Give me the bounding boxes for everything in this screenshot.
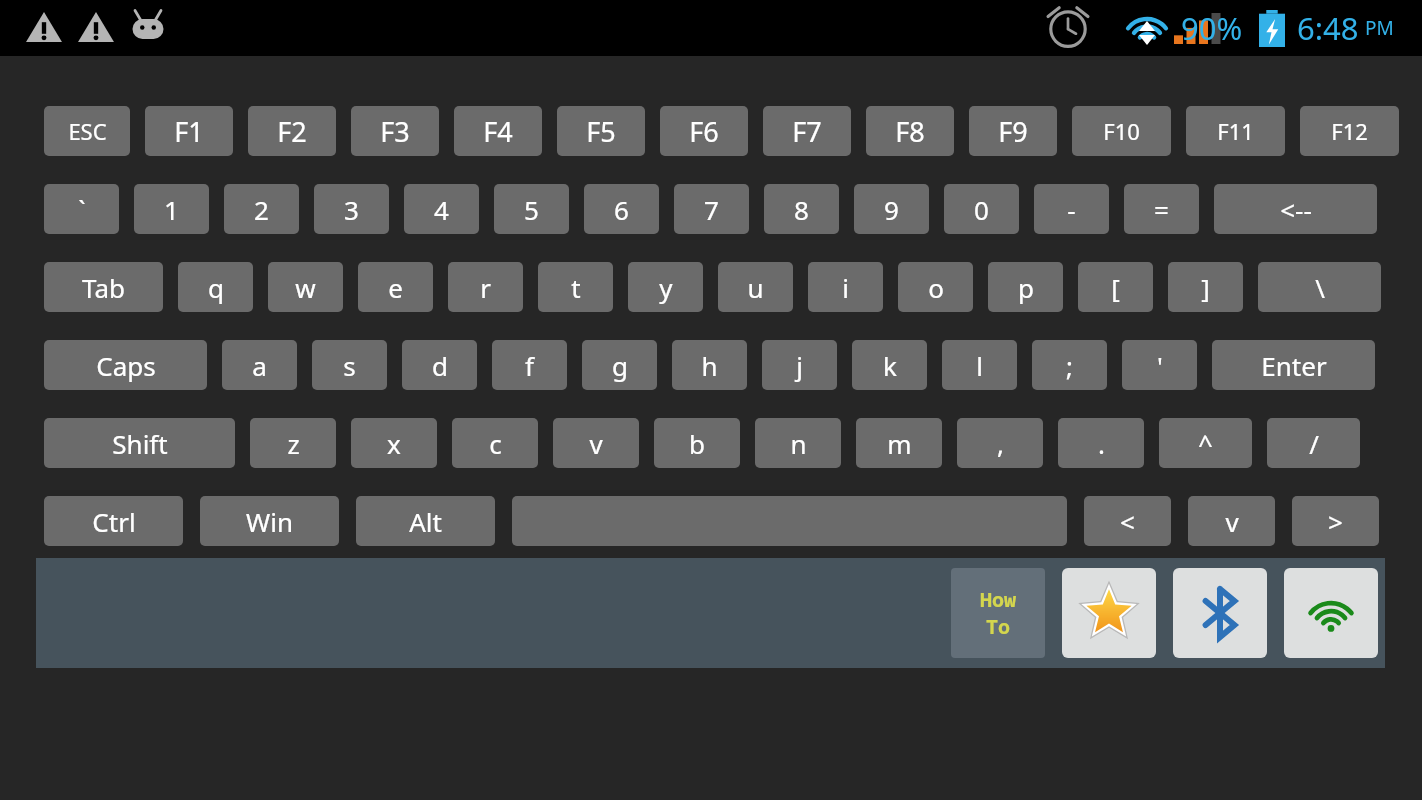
- button[interactable]: ]: [1168, 262, 1243, 312]
- button[interactable]: 3: [314, 184, 389, 234]
- staticText: q: [208, 270, 224, 305]
- staticText: 9: [884, 192, 899, 227]
- staticText: v: [589, 426, 603, 461]
- button[interactable]: f: [492, 340, 567, 390]
- button[interactable]: ': [1122, 340, 1197, 390]
- button[interactable]: 1: [134, 184, 209, 234]
- staticText: F10: [1103, 116, 1140, 146]
- button[interactable]: F1: [145, 106, 233, 156]
- button[interactable]: Alt: [356, 496, 495, 546]
- button[interactable]: ^: [1159, 418, 1252, 468]
- button[interactable]: `: [44, 184, 119, 234]
- button[interactable]: i: [808, 262, 883, 312]
- button[interactable]: F10: [1072, 106, 1171, 156]
- staticText: F6: [689, 113, 719, 150]
- button[interactable]: k: [852, 340, 927, 390]
- button[interactable]: a: [222, 340, 297, 390]
- button[interactable]: 6: [584, 184, 659, 234]
- button[interactable]: /: [1267, 418, 1360, 468]
- button[interactable]: b: [654, 418, 740, 468]
- button[interactable]: m: [856, 418, 942, 468]
- button[interactable]: q: [178, 262, 253, 312]
- button[interactable]: Bluetooth: [1173, 568, 1267, 658]
- button[interactable]: w: [268, 262, 343, 312]
- button[interactable]: t: [538, 262, 613, 312]
- button[interactable]: .: [1058, 418, 1144, 468]
- button[interactable]: 5: [494, 184, 569, 234]
- button[interactable]: r: [448, 262, 523, 312]
- button[interactable]: s: [312, 340, 387, 390]
- button[interactable]: -: [1034, 184, 1109, 234]
- button[interactable]: F9: [969, 106, 1057, 156]
- button[interactable]: Tab: [44, 262, 163, 312]
- staticText: F7: [792, 113, 822, 150]
- staticText: a: [252, 348, 267, 383]
- button[interactable]: F6: [660, 106, 748, 156]
- button[interactable]: F7: [763, 106, 851, 156]
- button[interactable]: F4: [454, 106, 542, 156]
- button[interactable]: d: [402, 340, 477, 390]
- staticText: r: [480, 270, 491, 305]
- staticText: 0: [974, 192, 989, 227]
- button[interactable]: ;: [1032, 340, 1107, 390]
- button[interactable]: p: [988, 262, 1063, 312]
- button[interactable]: Favorites: [1062, 568, 1156, 658]
- button[interactable]: F5: [557, 106, 645, 156]
- button[interactable]: y: [628, 262, 703, 312]
- button[interactable]: How: [951, 568, 1045, 658]
- button[interactable]: j: [762, 340, 837, 390]
- button[interactable]: Down: [1188, 496, 1275, 546]
- button[interactable]: Win: [200, 496, 339, 546]
- button[interactable]: 4: [404, 184, 479, 234]
- button[interactable]: Shift: [44, 418, 235, 468]
- button[interactable]: Left: [1084, 496, 1171, 546]
- button[interactable]: F3: [351, 106, 439, 156]
- button[interactable]: Right: [1292, 496, 1379, 546]
- button[interactable]: ,: [957, 418, 1043, 468]
- staticText: k: [883, 348, 897, 383]
- button[interactable]: 8: [764, 184, 839, 234]
- button[interactable]: v: [553, 418, 639, 468]
- button[interactable]: 2: [224, 184, 299, 234]
- staticText: g: [612, 348, 628, 383]
- button[interactable]: Caps: [44, 340, 207, 390]
- staticText: p: [1018, 270, 1034, 305]
- button[interactable]: Wi-Fi: [1284, 568, 1378, 658]
- button[interactable]: \: [1258, 262, 1381, 312]
- staticText: Alt: [409, 504, 442, 539]
- button[interactable]: e: [358, 262, 433, 312]
- staticText: F4: [483, 113, 513, 150]
- staticText: s: [343, 348, 356, 383]
- button[interactable]: h: [672, 340, 747, 390]
- staticText: F8: [895, 113, 925, 150]
- button[interactable]: F8: [866, 106, 954, 156]
- button[interactable]: 0: [944, 184, 1019, 234]
- staticText: c: [489, 426, 502, 461]
- staticText: F2: [277, 113, 307, 150]
- button[interactable]: F12: [1300, 106, 1399, 156]
- button[interactable]: =: [1124, 184, 1199, 234]
- button[interactable]: z: [250, 418, 336, 468]
- button[interactable]: Enter: [1212, 340, 1375, 390]
- button[interactable]: F2: [248, 106, 336, 156]
- button[interactable]: ESC: [44, 106, 130, 156]
- staticText: 6: [614, 192, 629, 227]
- staticText: j: [796, 348, 803, 383]
- button[interactable]: c: [452, 418, 538, 468]
- button[interactable]: l: [942, 340, 1017, 390]
- button[interactable]: [: [1078, 262, 1153, 312]
- button[interactable]: g: [582, 340, 657, 390]
- button[interactable]: Ctrl: [44, 496, 183, 546]
- button[interactable]: 9: [854, 184, 929, 234]
- staticText: 4: [434, 192, 449, 227]
- staticText: \: [1315, 270, 1325, 305]
- button[interactable]: n: [755, 418, 841, 468]
- button[interactable]: x: [351, 418, 437, 468]
- button[interactable]: u: [718, 262, 793, 312]
- button[interactable]: F11: [1186, 106, 1285, 156]
- button[interactable]: 7: [674, 184, 749, 234]
- button[interactable]: o: [898, 262, 973, 312]
- button[interactable]: Backspace: [1214, 184, 1377, 234]
- staticText: [: [1111, 270, 1120, 305]
